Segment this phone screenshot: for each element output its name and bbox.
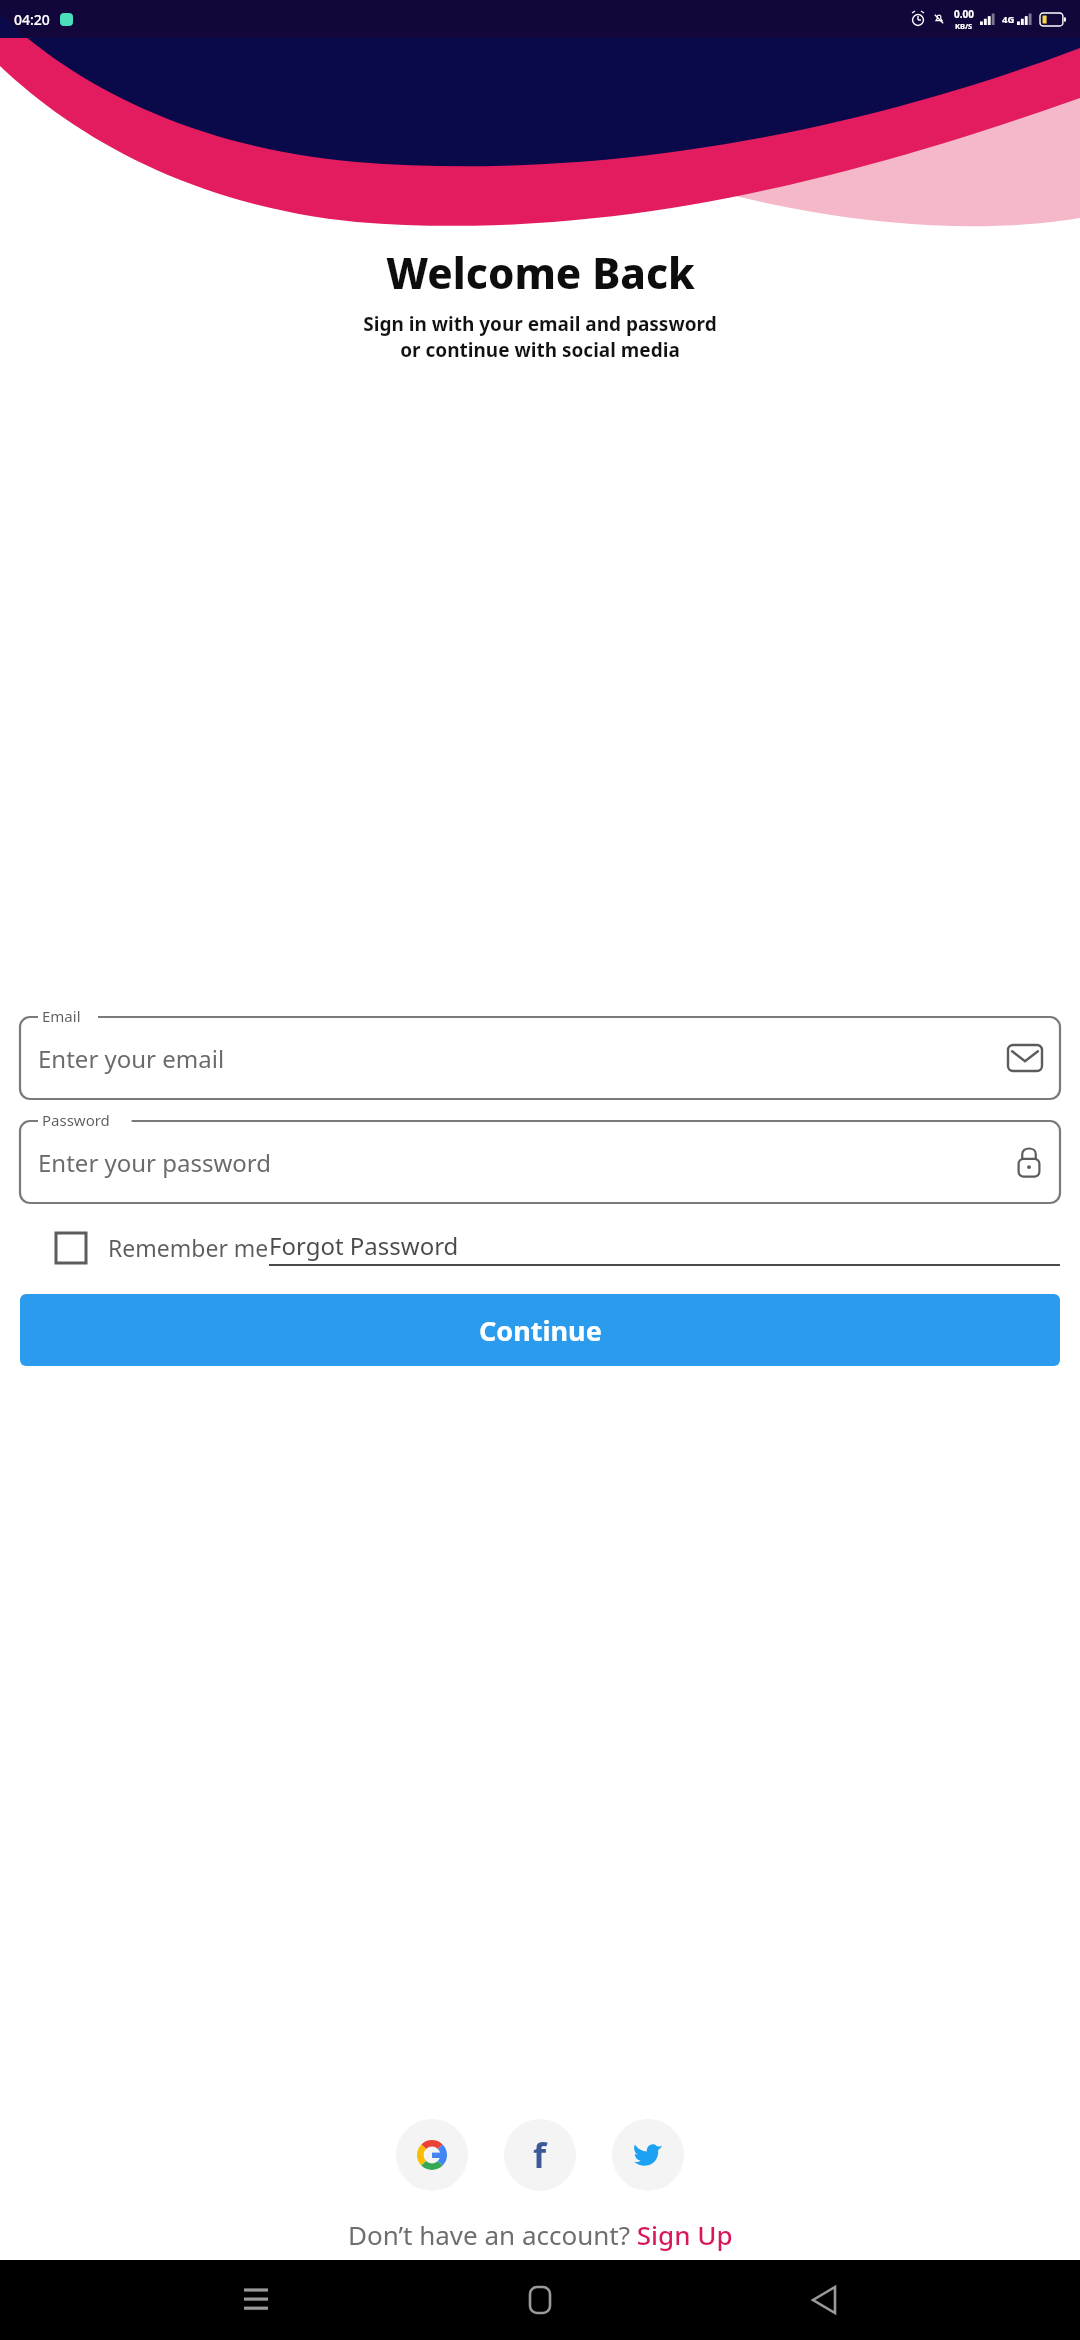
- button[interactable]: Back: [796, 2272, 852, 2328]
- staticText: Email: [42, 1006, 81, 1026]
- staticText: 0.00: [954, 7, 974, 21]
- button[interactable]: Sign in with Twitter: [612, 2119, 684, 2191]
- staticText: Password: [42, 1110, 110, 1130]
- other: Password: [1016, 1146, 1042, 1178]
- button[interactable]: Sign in with Facebook: [504, 2119, 576, 2191]
- button[interactable]: Home: [512, 2272, 568, 2328]
- staticText: KB/S: [955, 21, 973, 31]
- staticText: Don’t have an account? Sign Up: [348, 2217, 733, 2252]
- button[interactable]: Continue: [20, 1294, 1060, 1366]
- staticText: Remember me: [108, 1232, 269, 1263]
- staticText: 4G: [1002, 13, 1015, 26]
- staticText: Welcome Back: [386, 244, 695, 301]
- button[interactable]: Password: [20, 1121, 1060, 1203]
- other: Email: [1008, 1045, 1042, 1071]
- button[interactable]: Recents: [228, 2272, 284, 2328]
- staticText: f: [533, 2132, 547, 2178]
- staticText: Continue: [479, 1312, 602, 1349]
- staticText: 04:20: [14, 10, 50, 29]
- button[interactable]: Email: [20, 1017, 1060, 1099]
- staticText: Enter your password: [38, 1146, 272, 1179]
- button[interactable]: Sign in with Google: [396, 2119, 468, 2191]
- staticText: Sign in with your email and password or …: [363, 311, 717, 363]
- staticText: Enter your email: [38, 1042, 225, 1075]
- staticText: Forgot Password: [269, 1229, 459, 1262]
- button[interactable]: Don’t have an account? Sign Up: [0, 2217, 1080, 2252]
- button[interactable]: Forgot Password: [269, 1229, 1060, 1266]
- button[interactable]: Remember me: [20, 1232, 269, 1263]
